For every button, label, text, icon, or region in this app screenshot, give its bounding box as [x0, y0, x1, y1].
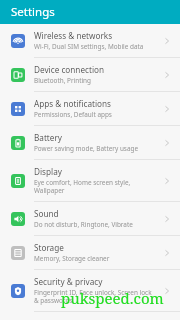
- staticText: Memory, Storage cleaner: [34, 254, 110, 263]
- staticText: Power saving mode, Battery usage: [34, 144, 139, 153]
- staticText: Bluetooth, Printing: [34, 76, 91, 85]
- button[interactable]: Battery: [0, 126, 180, 159]
- other: Open Display: [160, 174, 174, 188]
- other: Open Sound: [160, 212, 174, 226]
- staticText: Battery: [34, 132, 63, 143]
- staticText: Apps & notifications: [34, 98, 112, 109]
- staticText: Permissions, Default apps: [34, 110, 112, 119]
- button[interactable]: Wireless & networks: [0, 24, 180, 57]
- button[interactable]: Display: [0, 160, 180, 201]
- other: Open Apps & notifications: [160, 102, 174, 116]
- button[interactable]: Sound: [0, 202, 180, 235]
- staticText: Security & privacy: [34, 276, 103, 287]
- staticText: Display: [34, 166, 62, 177]
- other: Open Device connection: [160, 68, 174, 82]
- staticText: Wireless & networks: [34, 30, 113, 41]
- staticText: Device connection: [34, 64, 105, 75]
- staticText: Sound: [34, 208, 59, 219]
- button[interactable]: Security & privacy: [0, 270, 180, 311]
- staticText: Fingerprint ID, Face unlock, Screen lock…: [34, 288, 156, 305]
- staticText: Do not disturb, Ringtone, Vibrate: [34, 220, 133, 229]
- staticText: Storage: [34, 242, 64, 253]
- button[interactable]: Device connection: [0, 58, 180, 91]
- button[interactable]: Storage: [0, 236, 180, 269]
- other: Open Wireless & networks: [160, 34, 174, 48]
- other: Open Storage: [160, 246, 174, 260]
- other: Open Security & privacy: [160, 284, 174, 298]
- other: Open Battery: [160, 136, 174, 150]
- button[interactable]: Apps & notifications: [0, 92, 180, 125]
- staticText: Eye comfort, Home screen style, Wallpape…: [34, 178, 156, 195]
- staticText: Settings: [11, 4, 55, 20]
- staticText: Wi-Fi, Dual SIM settings, Mobile data: [34, 42, 144, 51]
- staticText: pukspeed.com: [61, 288, 164, 308]
